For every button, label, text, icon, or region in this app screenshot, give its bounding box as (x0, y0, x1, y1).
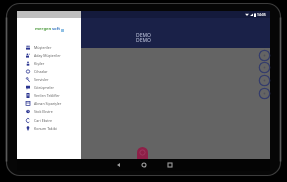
staticText: Cari Ekstre (34, 118, 53, 123)
button[interactable]: Aday Müşteriler (17, 51, 81, 59)
button[interactable]: Cari Ekstre (17, 116, 81, 124)
button[interactable]: Cihazlar (17, 67, 81, 75)
button[interactable]: Quick action (258, 61, 271, 74)
staticText: Servisler (34, 77, 49, 82)
button[interactable]: Servisler (17, 75, 81, 83)
staticText: Görüşmeler (34, 85, 55, 90)
staticText: Alınan Siparişler (34, 101, 62, 106)
button[interactable]: Görüşmeler (17, 83, 81, 91)
button[interactable]: Recent apps (164, 159, 176, 171)
button[interactable]: Müşteriler (17, 43, 81, 51)
button[interactable]: Quick action (258, 49, 271, 62)
staticText: DEMO (136, 37, 151, 44)
staticText: soft (52, 26, 61, 32)
staticText: Müşteriler (34, 45, 52, 50)
staticText: mergen (35, 26, 52, 32)
staticText: Konum Takibi (34, 126, 57, 131)
button[interactable]: Kişiler (17, 59, 81, 67)
staticText: Aday Müşteriler (34, 53, 61, 58)
button[interactable]: Stok Ekstre (17, 107, 81, 115)
button[interactable]: Alınan Siparişler (17, 99, 81, 107)
staticText: 14:05 (257, 12, 266, 17)
staticText: Stok Ekstre (34, 109, 53, 114)
staticText: Kişiler (34, 61, 45, 66)
button[interactable]: Konum Takibi (17, 124, 81, 132)
button[interactable]: Verilen Teklifler (17, 91, 81, 99)
staticText: DEMO (136, 32, 151, 39)
button[interactable]: Quick action (258, 87, 271, 100)
staticText: Cihazlar (34, 69, 48, 74)
staticText: Verilen Teklifler (34, 93, 60, 98)
button[interactable]: Quick action (258, 74, 271, 87)
button[interactable]: Home (138, 159, 150, 171)
button[interactable]: Back (112, 159, 124, 171)
